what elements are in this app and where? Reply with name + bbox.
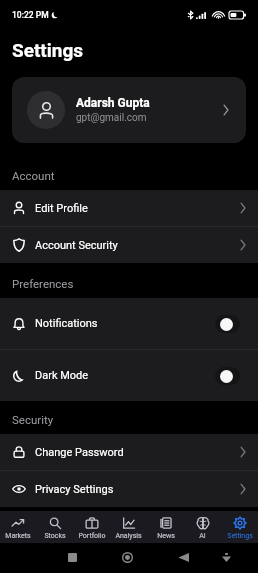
button[interactable]: News — [147, 511, 184, 540]
button[interactable]: Dark Mode — [0, 350, 258, 401]
staticText: Preferences — [12, 277, 74, 290]
button[interactable]: Adarsh Gupta — [12, 77, 246, 143]
staticText: Adarsh Gupta — [76, 96, 150, 110]
staticText: Portfolio — [78, 532, 106, 540]
button[interactable]: Notifications — [0, 298, 258, 349]
staticText: Analysis — [115, 532, 142, 540]
staticText: Edit Profile — [35, 202, 88, 215]
button[interactable]: AI — [184, 511, 221, 540]
button[interactable]: Portfolio — [73, 511, 110, 540]
staticText: 10:22 PM — [12, 10, 49, 20]
staticText: Security — [12, 413, 54, 426]
staticText: AI — [199, 532, 206, 540]
staticText: Change Password — [35, 446, 124, 459]
staticText: Dark Mode — [35, 369, 89, 382]
button[interactable]: Settings — [221, 511, 258, 540]
button[interactable]: Privacy Settings — [0, 471, 258, 507]
button[interactable]: Stocks — [36, 511, 73, 540]
staticText: Account — [12, 169, 55, 182]
staticText: Settings — [12, 39, 84, 61]
button[interactable]: Analysis — [110, 511, 147, 540]
button[interactable]: Account Security — [0, 227, 258, 263]
staticText: Privacy Settings — [35, 483, 114, 496]
staticText: gpt@gmail.com — [76, 112, 147, 124]
staticText: Settings — [227, 532, 253, 540]
button[interactable]: Markets — [0, 511, 36, 540]
staticText: Markets — [5, 532, 31, 540]
staticText: Notifications — [35, 317, 98, 330]
staticText: Account Security — [35, 239, 118, 252]
staticText: Stocks — [44, 532, 66, 540]
staticText: News — [157, 532, 175, 540]
button[interactable]: Edit Profile — [0, 190, 258, 226]
button[interactable]: Change Password — [0, 434, 258, 470]
